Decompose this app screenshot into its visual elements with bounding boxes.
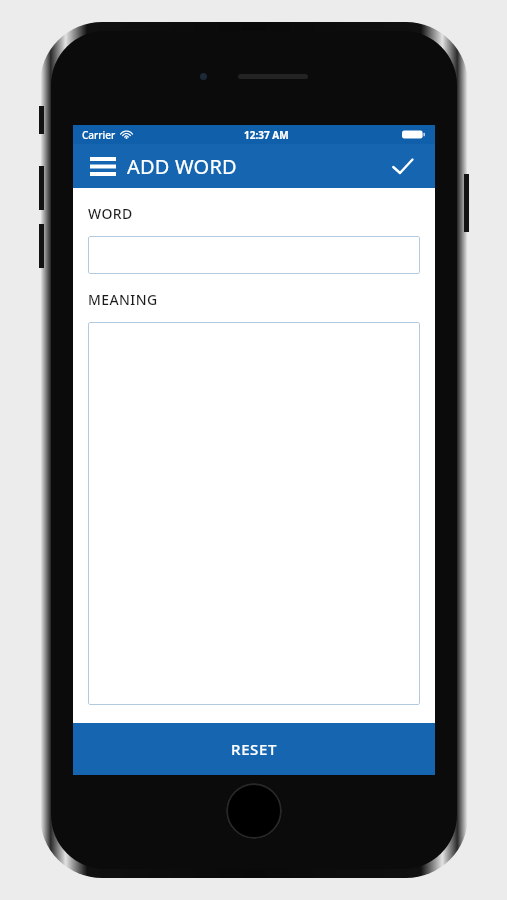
- staticText: RESET: [231, 739, 277, 759]
- button[interactable]: RESET: [73, 723, 435, 775]
- staticText: MEANING: [88, 290, 158, 309]
- button[interactable]: Open navigation menu: [85, 148, 121, 184]
- staticText: Carrier: [82, 128, 116, 142]
- button[interactable]: Meaning input field: [88, 322, 420, 705]
- staticText: ADD WORD: [127, 153, 237, 180]
- staticText: WORD: [88, 204, 133, 223]
- button[interactable]: Save word: [383, 147, 421, 185]
- button[interactable]: Word input field: [88, 236, 420, 274]
- staticText: 12:37 AM: [244, 128, 289, 142]
